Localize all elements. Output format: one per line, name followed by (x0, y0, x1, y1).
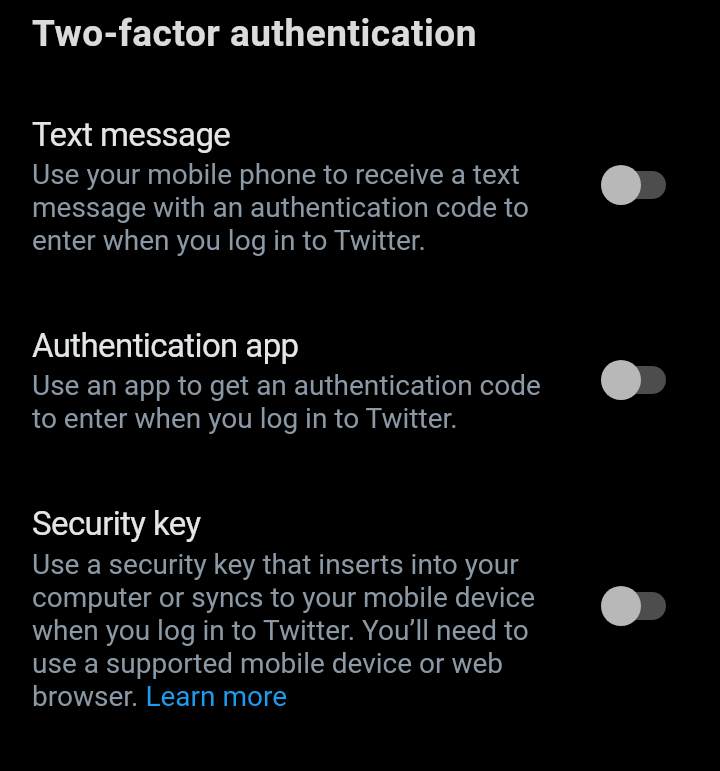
staticText: Use a security key that inserts into you… (32, 548, 545, 713)
staticText: Text message (32, 115, 231, 154)
staticText: Security key (32, 504, 201, 543)
staticText: Use your mobile phone to receive a text … (32, 158, 545, 257)
button[interactable] (0, 504, 569, 714)
button[interactable] (0, 326, 569, 438)
button[interactable]: Security key, off (577, 578, 669, 634)
button[interactable]: Text message, off (577, 157, 669, 213)
staticText: Use an app to get an authentication code… (32, 369, 545, 435)
staticText: Authentication app (32, 326, 299, 365)
button[interactable] (0, 115, 569, 260)
button[interactable]: Authentication app, off (577, 352, 669, 408)
staticText: Two-factor authentication (32, 12, 477, 55)
